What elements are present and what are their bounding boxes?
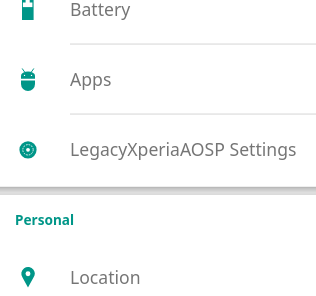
staticText: Battery <box>70 0 131 21</box>
other: Apps <box>16 67 40 91</box>
other: Location <box>16 265 40 289</box>
button[interactable]: Settings <box>0 114 316 184</box>
other: Settings <box>16 137 40 161</box>
staticText: Apps <box>70 67 112 91</box>
staticText: Personal <box>15 210 74 229</box>
button[interactable]: Apps <box>0 44 316 114</box>
staticText: Location <box>70 265 141 289</box>
staticText: LegacyXperiaAOSP Settings <box>70 137 297 161</box>
button[interactable]: Battery <box>0 0 316 44</box>
other: Battery <box>16 0 40 21</box>
button[interactable]: Location <box>0 242 316 296</box>
